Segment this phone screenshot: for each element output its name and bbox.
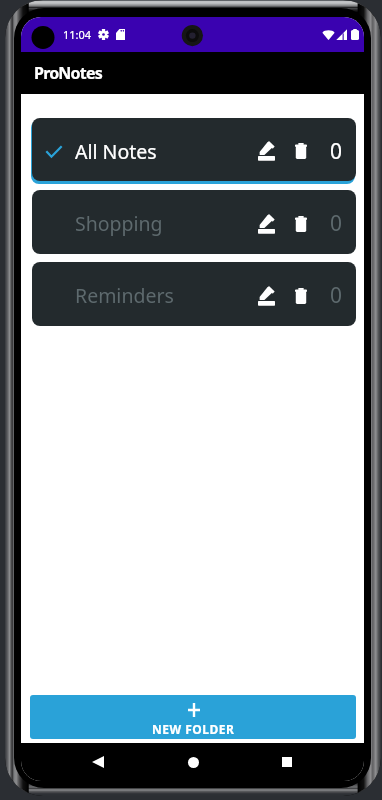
staticText: All Notes bbox=[75, 138, 157, 165]
button[interactable]: All Notes bbox=[32, 118, 356, 181]
button[interactable]: Back bbox=[80, 744, 116, 780]
button[interactable]: Home bbox=[175, 744, 211, 780]
button[interactable]: NEW FOLDER bbox=[30, 695, 356, 739]
button[interactable]: Edit folder bbox=[253, 276, 280, 316]
staticText: 11:04 bbox=[63, 27, 92, 42]
staticText: 0 bbox=[330, 209, 343, 238]
staticText: Shopping bbox=[75, 210, 163, 237]
staticText: Reminders bbox=[75, 282, 174, 309]
button[interactable]: Delete folder bbox=[290, 131, 312, 171]
button[interactable]: Shopping bbox=[32, 190, 356, 254]
button[interactable]: Edit folder bbox=[253, 131, 280, 171]
button[interactable]: Edit folder bbox=[253, 204, 280, 244]
button[interactable]: Delete folder bbox=[290, 204, 312, 244]
button[interactable]: Delete folder bbox=[290, 276, 312, 316]
button[interactable]: Reminders bbox=[32, 262, 356, 326]
button[interactable]: Recents bbox=[269, 744, 305, 780]
staticText: ProNotes bbox=[34, 62, 102, 84]
staticText: 0 bbox=[330, 281, 343, 310]
staticText: NEW FOLDER bbox=[152, 721, 235, 737]
staticText: 0 bbox=[330, 137, 343, 166]
